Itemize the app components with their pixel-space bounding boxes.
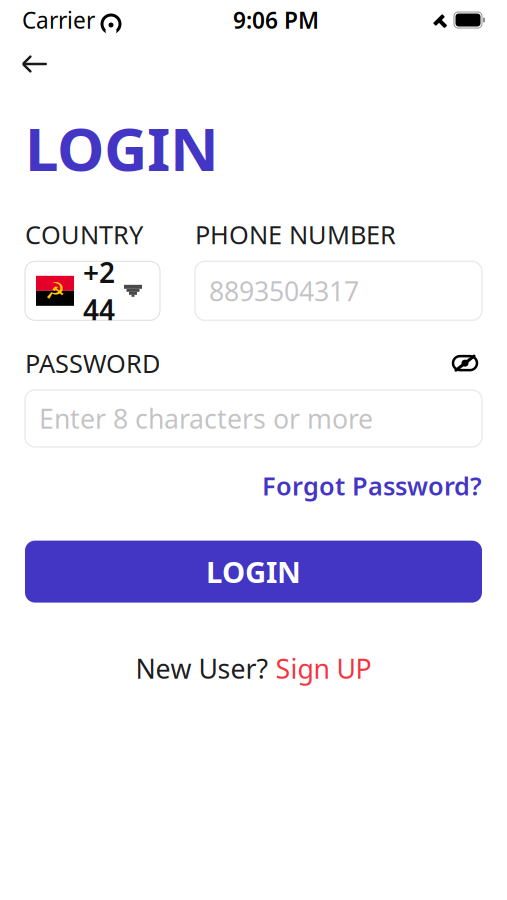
button[interactable]: Back (13, 42, 57, 86)
staticText: PASSWORD (25, 346, 160, 380)
button[interactable]: LOGIN (25, 541, 482, 603)
button[interactable]: Forgot Password? (262, 469, 482, 503)
staticText: Forgot Password? (262, 469, 482, 503)
button[interactable]: ☭ (25, 261, 160, 320)
staticText: 9:06 PM (233, 5, 319, 35)
button[interactable]: Sign UP (275, 651, 371, 686)
staticText: Sign UP (275, 651, 371, 686)
button[interactable]: Show password (448, 349, 482, 377)
staticText: LOGIN (206, 552, 301, 591)
staticText: COUNTRY (25, 218, 143, 251)
staticText: Carrier (22, 5, 95, 35)
staticText: 8893504317 (209, 273, 359, 308)
staticText: Enter 8 characters or more (39, 401, 373, 436)
staticText: New User? (135, 651, 275, 686)
staticText: PHONE NUMBER (195, 218, 396, 251)
staticText: +244 (83, 254, 115, 328)
staticText: LOGIN (25, 108, 219, 188)
staticText: ☭ (45, 278, 65, 304)
